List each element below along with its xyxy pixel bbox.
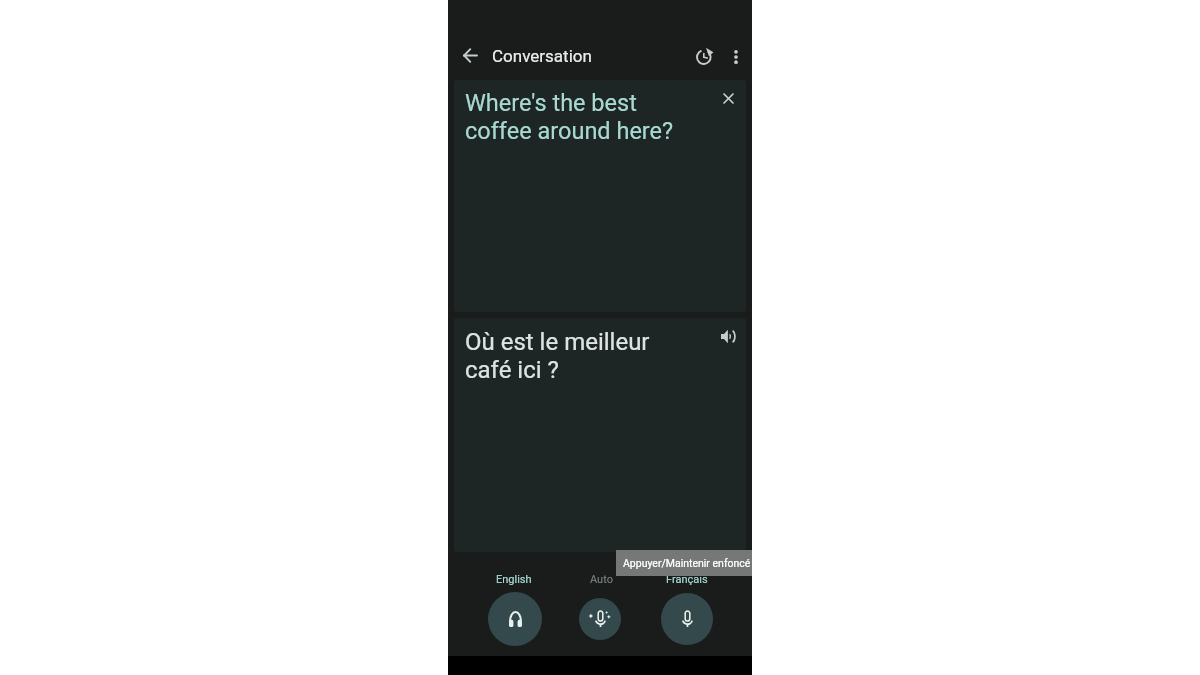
button[interactable]: Back — [453, 39, 486, 72]
button[interactable]: Français — [666, 573, 708, 586]
button[interactable]: More options — [719, 40, 752, 73]
button[interactable]: Speak French — [661, 593, 713, 645]
button[interactable]: English — [496, 573, 532, 586]
button[interactable]: Detect language — [579, 598, 621, 640]
button[interactable]: Play translation — [716, 324, 740, 348]
button[interactable]: Appuyer/Maintenir enfoncé — [616, 550, 752, 576]
button[interactable]: Where's the best coffee around here? — [454, 80, 746, 312]
button[interactable]: Listen — [488, 592, 542, 646]
button[interactable]: History — [686, 38, 722, 74]
staticText: Appuyer/Maintenir enfoncé — [623, 557, 751, 569]
staticText: Conversation — [492, 46, 592, 66]
button[interactable]: Où est le meilleur café ici ? — [454, 318, 746, 552]
staticText: Où est le meilleur café ici ? — [465, 328, 694, 384]
staticText: Where's the best coffee around here? — [465, 89, 694, 145]
button[interactable]: Auto — [590, 573, 613, 586]
button[interactable]: Close — [716, 86, 740, 110]
